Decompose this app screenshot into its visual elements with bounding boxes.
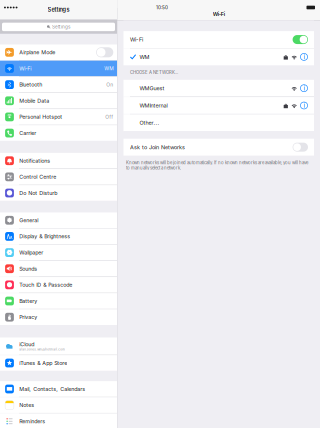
staticText: Settings [52, 24, 70, 30]
staticText: Display & Brightness [19, 233, 70, 240]
button[interactable]: Ask to Join Networks [123, 139, 314, 156]
staticText: Mail, Contacts, Calendars [19, 386, 85, 392]
button[interactable]: Mobile Data [0, 93, 117, 109]
button[interactable]: Settings [0, 19, 117, 34]
button[interactable]: Airplane Mode [0, 44, 117, 60]
staticText: Notes [19, 402, 34, 408]
staticText: Do Not Disturb [19, 190, 57, 196]
button[interactable]: General [0, 212, 117, 228]
button[interactable]: iTunes & App Store [0, 355, 117, 371]
button[interactable]: Other... [123, 114, 314, 131]
button[interactable]: WMGuest [123, 80, 314, 97]
button[interactable]: Control Centre [0, 169, 117, 185]
button[interactable]: iCloud [0, 337, 117, 355]
staticText: WM [139, 54, 149, 60]
staticText: Known networks will be joined automatica… [126, 160, 308, 170]
staticText: General [19, 217, 38, 223]
button[interactable]: Sounds [0, 261, 117, 277]
staticText: Mobile Data [19, 97, 49, 104]
button[interactable]: WM [123, 48, 314, 65]
staticText: Other... [139, 119, 159, 126]
staticText: Wi-Fi [213, 11, 225, 17]
staticText: WMInternal [139, 102, 167, 109]
staticText: alan.jones.wm@hotmail.com [19, 348, 65, 351]
button[interactable]: Battery [0, 293, 117, 309]
staticText: Personal Hotspot [19, 114, 62, 120]
button[interactable]: Personal Hotspot [0, 109, 117, 125]
staticText: CHOOSE A NETWORK... [130, 70, 178, 75]
button[interactable]: Wallpaper [0, 245, 117, 260]
staticText: iTunes & App Store [19, 360, 67, 366]
button[interactable]: Carrier [0, 125, 117, 141]
staticText: Control Centre [19, 174, 56, 180]
staticText: Airplane Mode [19, 49, 55, 56]
staticText: iCloud [19, 341, 34, 347]
staticText: Carrier [19, 130, 36, 136]
button[interactable]: Notifications [0, 153, 117, 169]
staticText: Reminders [19, 418, 45, 424]
staticText: Wi-Fi [130, 36, 143, 43]
staticText: WM [104, 65, 113, 71]
staticText: Off [105, 114, 113, 120]
staticText: Wi-Fi [19, 65, 31, 72]
staticText: On [106, 82, 113, 88]
button[interactable]: Notes [0, 397, 117, 413]
staticText: Battery [19, 298, 37, 304]
button[interactable]: Wi-Fi [0, 61, 117, 76]
button[interactable]: Mail, Contacts, Calendars [0, 381, 117, 397]
button[interactable]: Bluetooth [0, 77, 117, 92]
button[interactable]: Privacy [0, 309, 117, 325]
staticText: Wallpaper [19, 249, 43, 256]
button[interactable]: Do Not Disturb [0, 185, 117, 201]
button[interactable]: WMInternal [123, 97, 314, 114]
staticText: Notifications [19, 157, 50, 164]
staticText: Touch ID & Passcode [19, 282, 72, 288]
button[interactable]: Wi-Fi [123, 31, 314, 48]
staticText: 10:50 [156, 5, 168, 10]
staticText: Privacy [19, 314, 37, 320]
button[interactable]: Touch ID & Passcode [0, 277, 117, 293]
staticText: Bluetooth [19, 81, 42, 88]
button[interactable]: Reminders [0, 413, 117, 428]
staticText: Settings [47, 6, 69, 13]
staticText: WMGuest [139, 85, 164, 91]
staticText: Sounds [19, 265, 37, 272]
button[interactable]: Display & Brightness [0, 229, 117, 244]
staticText: Ask to Join Networks [130, 144, 185, 150]
